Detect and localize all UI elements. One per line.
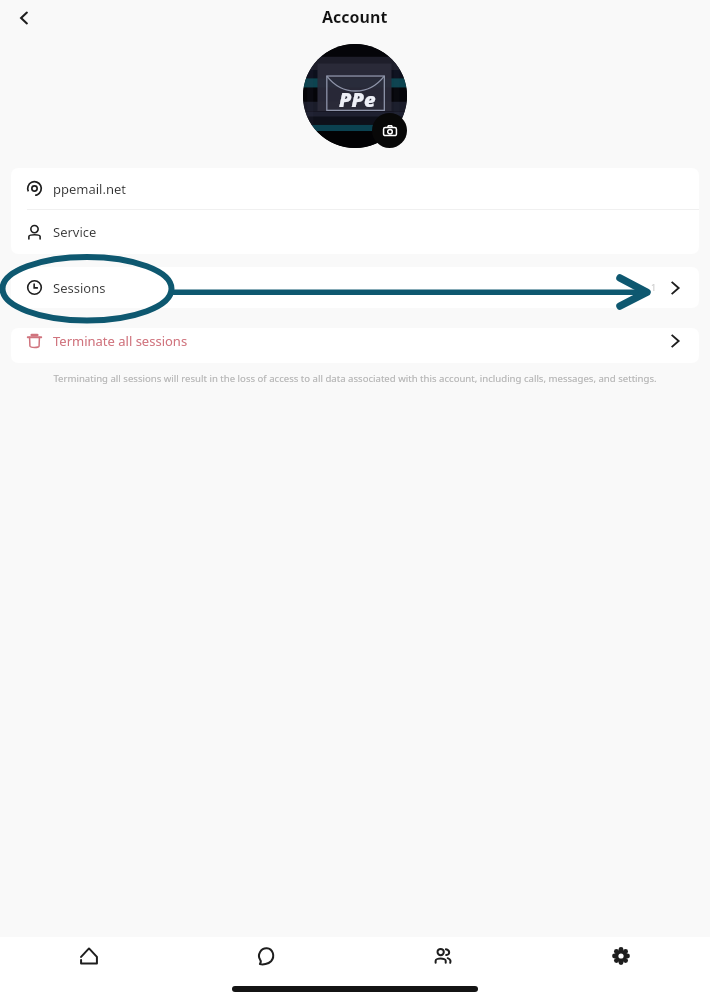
staticText: Service: [53, 223, 97, 241]
button[interactable]: ppemail.net: [11, 168, 699, 209]
button[interactable]: Settings: [532, 937, 710, 974]
button[interactable]: Contacts: [354, 937, 532, 974]
staticText: PPe: [339, 86, 376, 113]
staticText: Terminate all sessions: [53, 332, 188, 350]
button[interactable]: Home: [0, 937, 177, 974]
staticText: 1: [651, 281, 657, 293]
button[interactable]: Sessions: [11, 267, 699, 308]
button[interactable]: Service: [11, 210, 699, 254]
staticText: Account: [322, 6, 388, 28]
button[interactable]: Terminate all sessions: [11, 328, 699, 354]
button[interactable]: Chats: [177, 937, 354, 974]
staticText: Sessions: [53, 279, 106, 297]
button[interactable]: Change profile photo: [372, 113, 407, 148]
staticText: ppemail.net: [53, 180, 127, 198]
staticText: Terminating all sessions will result in …: [16, 372, 694, 385]
button[interactable]: Back: [6, 0, 42, 36]
